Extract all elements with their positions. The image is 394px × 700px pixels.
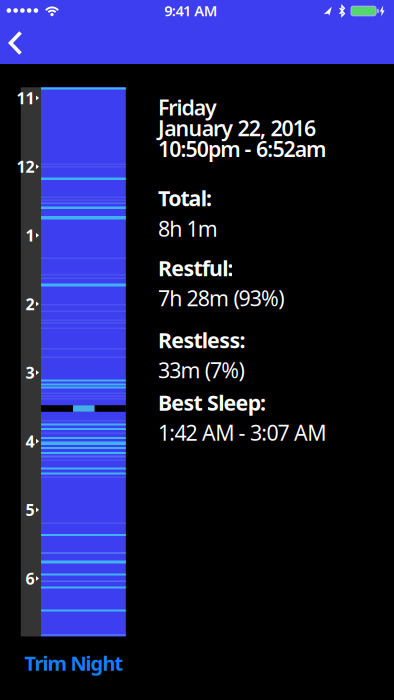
staticText: 11	[16, 87, 34, 109]
staticText: 33m (7%)	[158, 356, 244, 384]
staticText: 5	[25, 499, 34, 520]
staticText: Total:	[158, 184, 212, 212]
staticText: Friday	[158, 93, 217, 121]
staticText: 3	[25, 362, 34, 383]
staticText: 7h 28m (93%)	[158, 284, 284, 312]
staticText: Restful:	[158, 254, 233, 282]
staticText: 2	[25, 293, 34, 314]
staticText: 9:41 AM	[164, 1, 218, 20]
staticText: 12	[16, 156, 34, 177]
button[interactable]	[0, 21, 38, 65]
staticText: Best Sleep:	[158, 388, 266, 417]
staticText: 10:50pm - 6:52am	[158, 134, 326, 163]
staticText: 1	[25, 225, 34, 246]
staticText: 6	[25, 568, 34, 589]
staticText: 8h 1m	[158, 214, 218, 243]
staticText: January 22, 2016	[158, 114, 316, 142]
staticText: 4	[25, 431, 34, 452]
staticText: Trim Night	[24, 650, 123, 676]
staticText: 1:42 AM - 3:07 AM	[158, 418, 326, 447]
staticText: Restless:	[158, 326, 246, 354]
button[interactable]: Trim Night	[0, 649, 154, 677]
